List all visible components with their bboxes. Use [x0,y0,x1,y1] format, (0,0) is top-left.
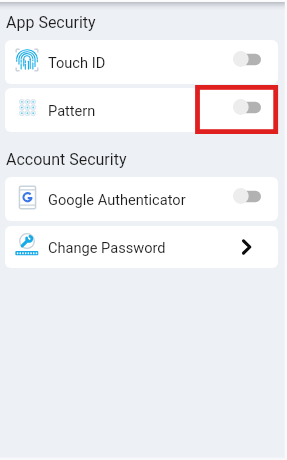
staticText: Google Authenticator [48,191,186,208]
button[interactable]: Touch ID [5,40,278,84]
staticText: Change Password [48,239,166,256]
button[interactable]: Toggle [235,48,263,70]
staticText: Account Security [6,150,127,169]
button[interactable]: Change Password [5,226,278,268]
button[interactable]: Toggle [235,96,263,118]
button[interactable]: Toggle [235,185,263,207]
staticText: App Security [6,13,96,32]
button[interactable]: Open Change Password [241,236,263,258]
staticText: Pattern [48,102,96,119]
button[interactable]: Pattern [5,88,278,132]
staticText: Touch ID [48,54,106,71]
button[interactable]: Google Authenticator [5,177,278,221]
